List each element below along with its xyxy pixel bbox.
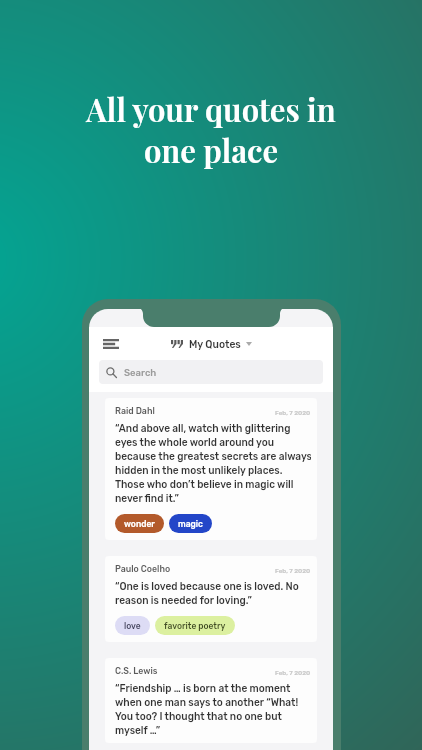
button[interactable]: Open navigation menu (97, 330, 125, 358)
button[interactable]: C.S. Lewis (105, 658, 317, 743)
staticText: My Quotes (189, 338, 241, 350)
staticText: Paulo Coelho (115, 564, 171, 574)
button[interactable]: Paulo Coelho (105, 556, 317, 642)
staticText: love (124, 621, 141, 631)
button[interactable]: favorite poetry (155, 616, 235, 635)
staticText: “And above all, watch with glittering ey… (115, 423, 311, 504)
button[interactable]: My Quotes (171, 338, 252, 350)
button[interactable]: magic (169, 514, 212, 533)
staticText: C.S. Lewis (115, 666, 158, 676)
staticText: Feb, 7 2020 (275, 567, 311, 574)
button[interactable]: love (115, 616, 150, 635)
staticText: Raid Dahl (115, 406, 155, 416)
staticText: Search (124, 367, 157, 378)
button[interactable]: wonder (115, 514, 164, 533)
staticText: “One is loved because one is loved. No r… (115, 581, 299, 606)
button[interactable]: Search (99, 360, 323, 384)
staticText: wonder (124, 519, 155, 529)
staticText: Feb, 7 2020 (275, 409, 311, 416)
staticText: favorite poetry (164, 621, 226, 631)
staticText: magic (178, 519, 203, 529)
button[interactable]: Raid Dahl (105, 398, 317, 540)
staticText: All your quotes in one place (86, 88, 336, 171)
staticText: “Friendship … is born at the moment when… (115, 683, 299, 736)
staticText: Feb, 7 2020 (275, 669, 311, 676)
